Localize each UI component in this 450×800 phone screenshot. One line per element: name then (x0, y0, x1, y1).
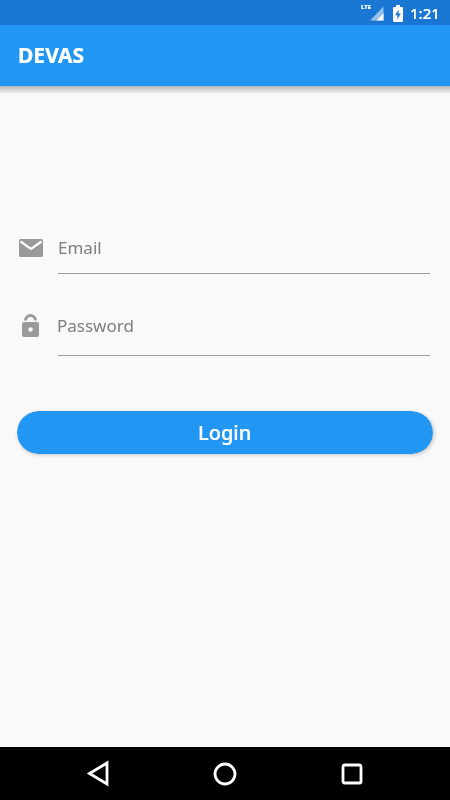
staticText: Email (58, 236, 102, 259)
staticText: Password (57, 314, 134, 337)
button[interactable] (334, 756, 370, 792)
staticText: 1:21 (410, 3, 440, 23)
button[interactable] (207, 756, 243, 792)
staticText: DEVAS (18, 41, 85, 70)
staticText: Login (198, 419, 252, 446)
button[interactable]: Login (17, 411, 433, 454)
staticText: LTE (361, 3, 372, 11)
button[interactable] (80, 756, 116, 792)
